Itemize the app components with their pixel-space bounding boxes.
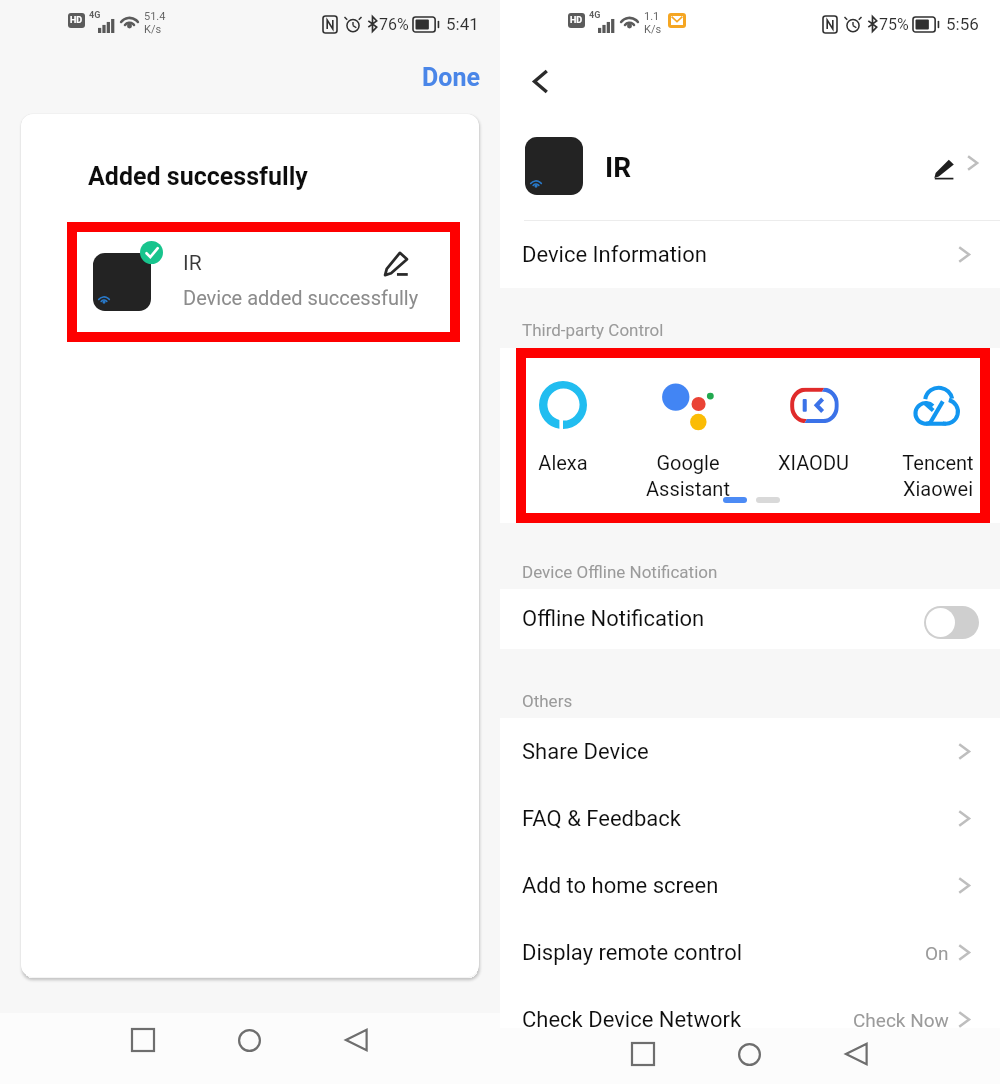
button[interactable]: Google Assistant (632, 381, 744, 500)
staticText: K/s (644, 23, 662, 36)
button[interactable]: Back (331, 1015, 381, 1065)
staticText: 5:41 (446, 14, 479, 34)
staticText: Share Device (522, 739, 649, 765)
staticText: Alexa (538, 451, 588, 474)
button[interactable]: Back (517, 58, 563, 104)
button[interactable]: Display remote control (500, 919, 1000, 986)
staticText: Device added successfully (183, 286, 419, 309)
button[interactable]: Add to home screen (500, 852, 1000, 919)
staticText: HD (570, 15, 583, 26)
staticText: 4G (589, 10, 601, 21)
staticText: Check Device Network (522, 1007, 742, 1033)
staticText: IR (183, 251, 202, 276)
button[interactable]: FAQ & Feedback (500, 785, 1000, 852)
button[interactable]: Rename device (931, 156, 957, 182)
button[interactable]: Home (224, 1015, 274, 1065)
staticText: K/s (144, 23, 162, 36)
button[interactable]: Recents (618, 1029, 668, 1079)
button[interactable]: Device Information (500, 221, 1000, 288)
staticText: XIAODU (778, 451, 849, 474)
button[interactable]: XIAODU (757, 381, 869, 474)
staticText: Device Offline Notification (522, 562, 718, 582)
staticText: Google Assistant (646, 451, 730, 500)
button[interactable]: Recents (118, 1015, 168, 1065)
staticText: 51.4 (144, 10, 166, 23)
staticText: Device Information (522, 242, 707, 268)
button[interactable]: Done (412, 57, 490, 98)
staticText: 75% (879, 15, 909, 34)
staticText: Add to home screen (522, 873, 719, 899)
button[interactable]: Share Device (500, 718, 1000, 785)
staticText: FAQ & Feedback (522, 806, 681, 832)
button[interactable]: Tencent Xiaowei (882, 381, 994, 500)
staticText: Done (422, 63, 480, 92)
staticText: Tencent Xiaowei (902, 451, 974, 500)
button[interactable]: Rename device (380, 248, 412, 280)
staticText: IR (605, 151, 632, 184)
staticText: HD (70, 15, 83, 26)
button[interactable]: IR (500, 108, 1000, 220)
staticText: 76% (379, 15, 409, 34)
staticText: 4G (89, 10, 101, 21)
staticText: On (925, 942, 949, 964)
button[interactable]: Check Device Network (500, 986, 1000, 1053)
button[interactable]: Offline Notification (500, 589, 1000, 649)
button[interactable]: Back (831, 1029, 881, 1079)
staticText: 1.1 (644, 10, 660, 23)
staticText: Added successfully (88, 162, 308, 191)
staticText: Others (522, 691, 573, 711)
staticText: Third-party Control (522, 320, 664, 340)
button[interactable]: Alexa (507, 381, 619, 474)
button[interactable]: IR (77, 232, 450, 332)
staticText: Offline Notification (522, 606, 705, 632)
button[interactable]: Home (724, 1029, 774, 1079)
staticText: Display remote control (522, 940, 743, 966)
staticText: Check Now (853, 1009, 949, 1031)
staticText: 5:56 (946, 14, 979, 34)
